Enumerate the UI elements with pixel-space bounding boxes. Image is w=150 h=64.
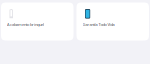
button[interactable]: Acabamento brinquel: [1, 2, 73, 40]
staticText: Garantía Todo Vida: [82, 22, 114, 27]
staticText: Acabamento brinquel: [7, 22, 44, 27]
button[interactable]: Garantía Todo Vida: [76, 2, 149, 40]
